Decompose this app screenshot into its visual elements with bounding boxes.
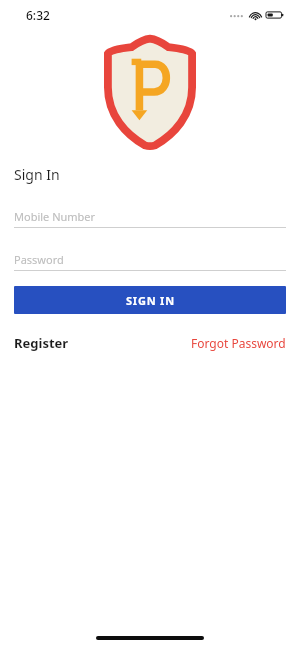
staticText: Register	[14, 334, 69, 352]
button[interactable]: Register	[14, 334, 69, 352]
other: App logo	[104, 33, 196, 151]
staticText: SIGN IN	[126, 293, 175, 308]
button[interactable]: Mobile Number	[14, 205, 286, 227]
button[interactable]: Forgot Password	[191, 335, 286, 351]
button[interactable]: Password	[14, 248, 286, 270]
staticText: Forgot Password	[191, 335, 286, 351]
button[interactable]: SIGN IN	[14, 286, 286, 314]
staticText: Sign In	[14, 165, 60, 184]
staticText: 6:32	[26, 7, 50, 23]
staticText: Password	[14, 252, 64, 267]
staticText: Mobile Number	[14, 209, 96, 224]
